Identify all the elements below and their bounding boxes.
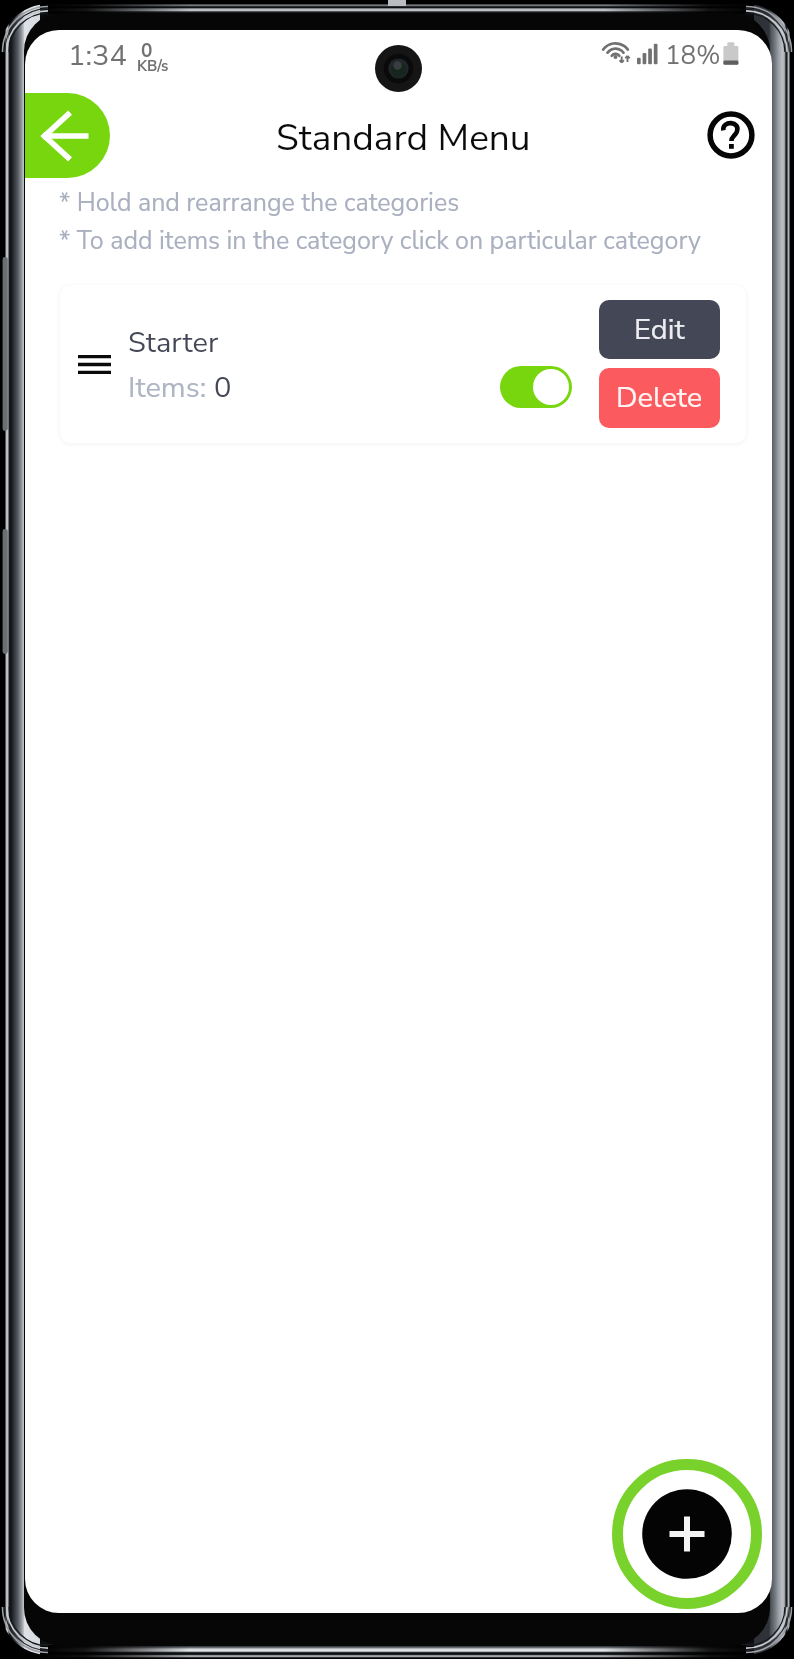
button[interactable]: Add category — [612, 1459, 762, 1609]
button[interactable]: Delete — [599, 368, 720, 428]
staticText: 1:34 — [68, 36, 127, 76]
staticText: 0 — [214, 368, 232, 408]
button[interactable]: Toggle category — [500, 366, 572, 408]
staticText: 0 — [141, 38, 153, 64]
staticText: Items: — [128, 368, 214, 408]
button[interactable]: Edit — [599, 300, 720, 359]
staticText: * To add items in the category click on … — [59, 224, 701, 258]
staticText: 18% — [665, 38, 721, 73]
staticText: Starter — [128, 323, 219, 363]
staticText: Delete — [616, 378, 703, 418]
button[interactable]: Help — [701, 105, 761, 165]
staticText: * Hold and rearrange the categories — [59, 186, 460, 220]
staticText: KB/s — [137, 56, 169, 76]
button[interactable]: Back — [25, 93, 110, 178]
staticText: Standard Menu — [276, 113, 531, 163]
staticText: Edit — [634, 310, 685, 350]
button[interactable]: Starter — [60, 285, 746, 443]
